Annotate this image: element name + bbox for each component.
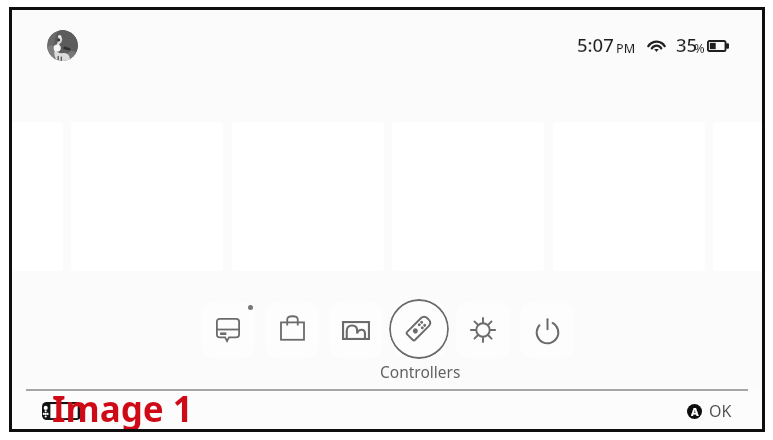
button[interactable]: Notifications: [200, 302, 256, 358]
button[interactable]: Account: [47, 30, 78, 61]
button[interactable]: Apps: [264, 300, 320, 356]
staticText: Image 1: [52, 385, 193, 433]
staticText: PM: [616, 40, 636, 57]
button[interactable]: Settings: [455, 302, 511, 358]
staticText: A: [691, 404, 699, 419]
button[interactable]: Channel card 6: [713, 122, 773, 271]
staticText: Controllers: [380, 361, 461, 382]
button[interactable]: Power: [519, 302, 575, 358]
button[interactable]: Channel card 1: [0, 122, 63, 271]
staticText: 35: [676, 32, 698, 57]
staticText: 5:07: [577, 32, 614, 57]
button[interactable]: Controllers: [389, 299, 449, 359]
button[interactable]: Ambient mode: [328, 302, 384, 358]
staticText: OK: [709, 400, 732, 422]
staticText: %: [694, 40, 705, 57]
